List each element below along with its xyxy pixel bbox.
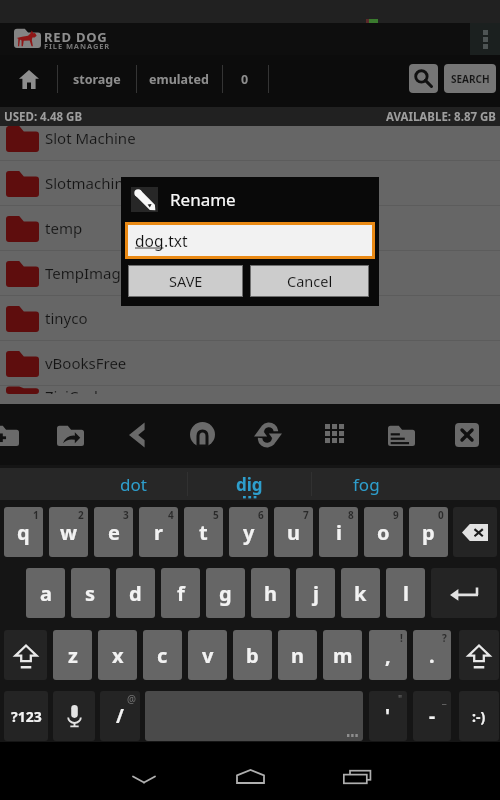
button[interactable]: i <box>319 507 358 557</box>
button[interactable]: y <box>229 507 268 557</box>
button[interactable]: dog <box>128 225 372 256</box>
button[interactable]: l <box>386 568 425 618</box>
staticText: @ <box>127 692 136 706</box>
button[interactable]: Select all <box>174 407 230 462</box>
button[interactable]: d <box>116 568 155 618</box>
button[interactable]: Shift <box>4 630 47 680</box>
button[interactable]: x <box>98 630 137 680</box>
staticText: temp <box>45 218 83 238</box>
button[interactable]: g <box>206 568 245 618</box>
staticText: / <box>116 703 124 729</box>
button[interactable]: Grid view <box>307 407 363 462</box>
button[interactable]: q <box>4 507 43 557</box>
staticText: :-) <box>472 707 486 726</box>
staticText: 5 <box>213 508 219 522</box>
button[interactable]: Refresh <box>240 407 296 462</box>
button[interactable]: b <box>233 630 272 680</box>
button[interactable]: f <box>161 568 200 618</box>
staticText: t <box>199 519 208 546</box>
button[interactable]: tinyco <box>0 296 500 340</box>
button[interactable]: Home <box>220 754 280 798</box>
button[interactable]: dig <box>188 468 311 500</box>
button[interactable]: . <box>413 630 451 680</box>
button[interactable]: z <box>53 630 92 680</box>
staticText: j <box>313 580 319 607</box>
staticText: .txt <box>164 230 188 251</box>
button[interactable]: Search <box>409 64 438 93</box>
staticText: Slotmachine <box>45 173 133 193</box>
staticText: r <box>154 519 163 546</box>
staticText: 9 <box>393 508 399 522</box>
staticText: d <box>129 580 142 607</box>
staticText: 2 <box>78 508 84 522</box>
button[interactable]: v <box>188 630 227 680</box>
button[interactable]: Back <box>109 407 165 462</box>
button[interactable]: e <box>94 507 133 557</box>
button[interactable]: p <box>409 507 448 557</box>
button[interactable]: Symbols <box>4 691 48 741</box>
button[interactable]: Details <box>373 407 429 462</box>
button[interactable]: Slotmachine <box>0 161 500 205</box>
button[interactable]: Shift <box>459 630 499 680</box>
button[interactable]: h <box>251 568 290 618</box>
button[interactable]: SAVE <box>129 266 242 296</box>
button[interactable]: Hide keyboard <box>114 757 174 800</box>
button[interactable]: / <box>100 691 140 741</box>
button[interactable]: Emoticons <box>459 691 499 741</box>
staticText: 3 <box>123 508 129 522</box>
button[interactable]: o <box>364 507 403 557</box>
button[interactable]: Close <box>439 407 495 462</box>
staticText: tinyco <box>45 308 88 328</box>
staticText: g <box>219 580 232 607</box>
button[interactable]: Enter <box>431 568 497 618</box>
staticText: ' <box>385 703 391 729</box>
button[interactable]: vBooksFree <box>0 341 500 385</box>
button[interactable]: j <box>296 568 335 618</box>
button[interactable]: Move <box>42 407 98 462</box>
staticText: 6 <box>258 508 264 522</box>
button[interactable]: TempImages <box>0 251 500 295</box>
button[interactable]: c <box>143 630 182 680</box>
button[interactable]: Voice input <box>53 691 95 741</box>
button[interactable]: , <box>369 630 407 680</box>
button[interactable]: r <box>139 507 178 557</box>
button[interactable]: temp <box>0 206 500 250</box>
staticText: dot <box>120 473 147 496</box>
staticText: 8 <box>348 508 354 522</box>
button[interactable]: dot <box>0 468 187 500</box>
button[interactable]: Space <box>145 691 363 741</box>
button[interactable]: ZiviCache <box>0 386 500 394</box>
staticText: ZiviCache <box>45 386 112 394</box>
button[interactable]: Home <box>0 55 57 103</box>
button[interactable]: w <box>49 507 88 557</box>
button[interactable]: Cancel <box>251 266 368 296</box>
staticText: Cancel <box>287 271 333 291</box>
staticText: emulated <box>149 71 209 88</box>
button[interactable]: Backspace <box>453 507 497 557</box>
button[interactable]: Slot Machine <box>0 126 500 160</box>
button[interactable]: emulated <box>136 55 222 103</box>
staticText: USED: 4.48 GB <box>4 109 83 125</box>
button[interactable]: Recents <box>327 755 387 799</box>
button[interactable]: More options <box>470 23 500 55</box>
button[interactable]: s <box>71 568 110 618</box>
button[interactable]: ' <box>369 691 407 741</box>
staticText: vBooksFree <box>45 353 127 373</box>
staticText: RED DOG <box>44 28 108 46</box>
staticText: TempImages <box>45 263 137 283</box>
staticText: c <box>157 642 168 669</box>
button[interactable]: a <box>26 568 65 618</box>
button[interactable]: storage <box>57 55 136 103</box>
button[interactable]: u <box>274 507 313 557</box>
button[interactable]: n <box>278 630 317 680</box>
button[interactable]: k <box>341 568 380 618</box>
button[interactable]: 0 <box>222 55 268 103</box>
staticText: Slot Machine <box>45 128 136 148</box>
button[interactable]: t <box>184 507 223 557</box>
button[interactable]: fog <box>312 468 500 500</box>
button[interactable]: SEARCH <box>444 64 496 93</box>
button[interactable]: New folder <box>0 407 33 462</box>
staticText: SEARCH <box>451 72 490 86</box>
button[interactable]: - <box>413 691 451 741</box>
button[interactable]: m <box>323 630 362 680</box>
